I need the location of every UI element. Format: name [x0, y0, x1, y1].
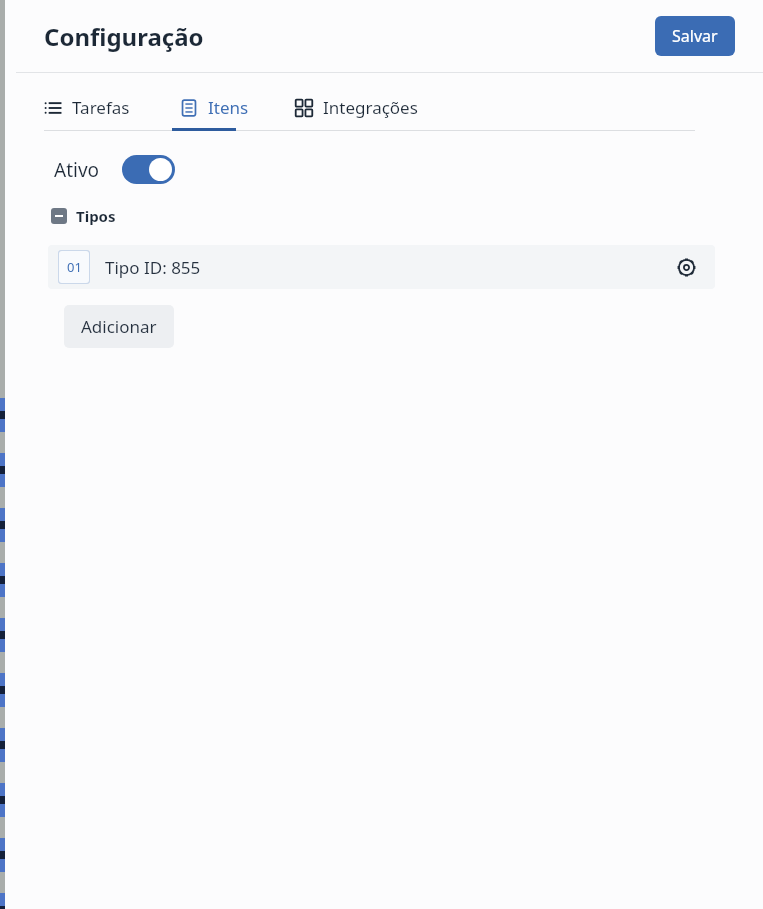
staticText: Itens	[208, 96, 249, 119]
staticText: Salvar	[672, 25, 718, 47]
staticText: Tipo ID: 855	[105, 256, 201, 279]
button[interactable]: Ativo	[54, 155, 175, 184]
staticText: 01	[67, 258, 82, 276]
staticText: Ativo	[54, 157, 100, 183]
button[interactable]: Salvar	[655, 16, 735, 56]
button[interactable]: Integrações	[295, 96, 418, 131]
button[interactable]: 01	[48, 245, 715, 289]
staticText: Tipos	[76, 206, 116, 226]
button[interactable]: Tarefas	[44, 96, 130, 131]
button[interactable]: Adicionar	[64, 305, 174, 348]
staticText: Tarefas	[72, 96, 130, 119]
button[interactable]: Tipos	[51, 206, 116, 226]
button[interactable]: Itens	[180, 96, 249, 131]
staticText: Integrações	[323, 96, 418, 119]
staticText: Adicionar	[81, 315, 157, 338]
staticText: Configuração	[44, 20, 204, 53]
button[interactable]: Configurar tipo	[673, 254, 699, 280]
